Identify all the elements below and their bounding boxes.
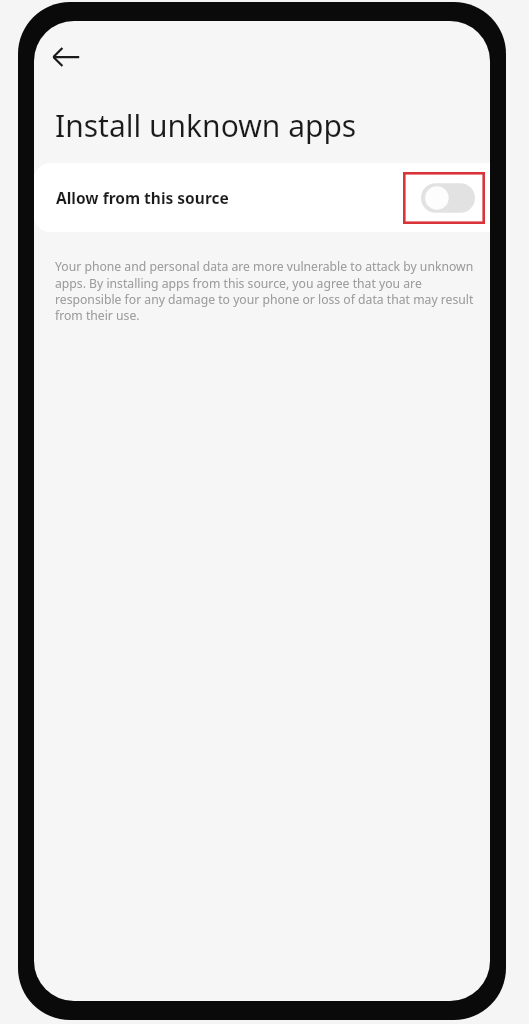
- button[interactable]: Allow from this source: [34, 163, 490, 232]
- staticText: Your phone and personal data are more vu…: [55, 258, 476, 323]
- button[interactable]: Allow from this source toggle: [420, 177, 476, 219]
- staticText: Install unknown apps: [55, 105, 357, 146]
- staticText: Allow from this source: [56, 187, 420, 208]
- button[interactable]: Back: [40, 31, 92, 83]
